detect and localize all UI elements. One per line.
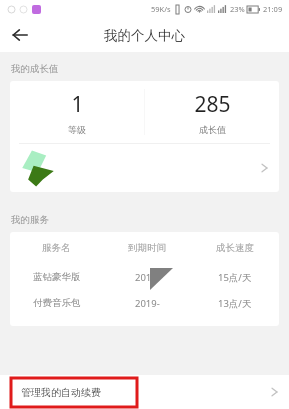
staticText: 成长值 xyxy=(199,124,226,135)
staticText: 15点/天 xyxy=(218,271,252,284)
staticText: 成长速度 xyxy=(216,242,254,254)
staticText: 2019- xyxy=(135,271,160,284)
staticText: 付费音乐包 xyxy=(33,297,81,309)
button[interactable]: 付费音乐包 xyxy=(10,290,279,316)
button[interactable] xyxy=(10,144,279,192)
button[interactable]: 管理我的自动续费 xyxy=(0,375,289,409)
staticText: 蓝钻豪华版 xyxy=(33,271,81,283)
button[interactable]: Back xyxy=(0,18,40,52)
button[interactable]: 蓝钻豪华版 xyxy=(10,264,279,290)
staticText: 13点/天 xyxy=(218,297,252,310)
staticText: 我的个人中心 xyxy=(104,27,185,44)
staticText: 59K/s xyxy=(151,4,171,14)
staticText: 21:09 xyxy=(263,4,283,14)
staticText: 1 xyxy=(71,90,84,119)
staticText: 285 xyxy=(194,90,231,119)
staticText: 我的服务 xyxy=(11,214,49,226)
staticText: 等级 xyxy=(68,124,86,135)
staticText: 我的成长值 xyxy=(11,63,59,75)
staticText: 2019- xyxy=(135,297,160,310)
staticText: 23% xyxy=(230,4,245,14)
staticText: 到期时间 xyxy=(128,242,166,254)
staticText: 管理我的自动续费 xyxy=(21,386,101,399)
staticText: 服务名 xyxy=(42,242,71,254)
